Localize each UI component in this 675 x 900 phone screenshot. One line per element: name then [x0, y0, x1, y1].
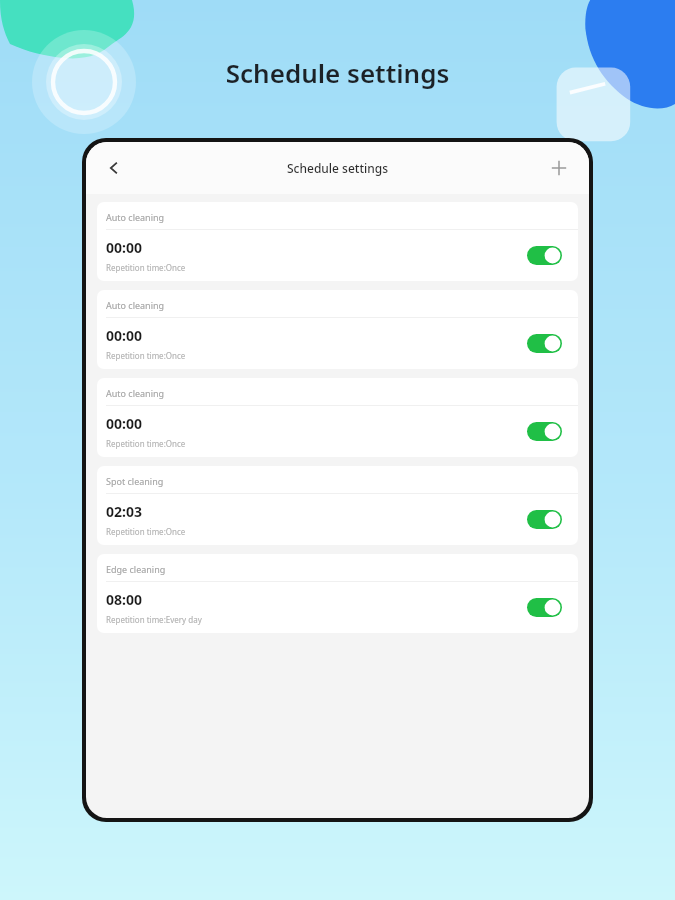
button[interactable]: Back — [94, 148, 134, 188]
staticText: Repetition time:Once — [106, 262, 186, 273]
button[interactable]: Toggle Edge cleaning — [527, 598, 562, 617]
staticText: Schedule settings — [0, 55, 675, 90]
staticText: Auto cleaning — [106, 299, 165, 311]
staticText: 08:00 — [106, 590, 142, 609]
staticText: Spot cleaning — [106, 475, 164, 487]
staticText: Auto cleaning — [106, 387, 165, 399]
staticText: Schedule settings — [287, 160, 389, 176]
button[interactable]: Toggle Auto cleaning — [527, 334, 562, 353]
staticText: Repetition time:Once — [106, 526, 186, 537]
button[interactable]: Toggle Auto cleaning — [527, 246, 562, 265]
staticText: 00:00 — [106, 238, 142, 257]
button[interactable]: Toggle Spot cleaning — [527, 510, 562, 529]
button[interactable]: Edge cleaning — [97, 554, 578, 633]
staticText: 02:03 — [106, 502, 142, 521]
button[interactable]: Auto cleaning — [97, 202, 578, 281]
staticText: Repetition time:Every day — [106, 614, 202, 625]
button[interactable]: Auto cleaning — [97, 378, 578, 457]
staticText: 00:00 — [106, 414, 142, 433]
staticText: 00:00 — [106, 326, 142, 345]
staticText: Auto cleaning — [106, 211, 165, 223]
button[interactable]: Auto cleaning — [97, 290, 578, 369]
staticText: Repetition time:Once — [106, 438, 186, 449]
button[interactable]: Add schedule — [539, 148, 579, 188]
staticText: Repetition time:Once — [106, 350, 186, 361]
button[interactable]: Toggle Auto cleaning — [527, 422, 562, 441]
button[interactable]: Spot cleaning — [97, 466, 578, 545]
staticText: Edge cleaning — [106, 563, 166, 575]
